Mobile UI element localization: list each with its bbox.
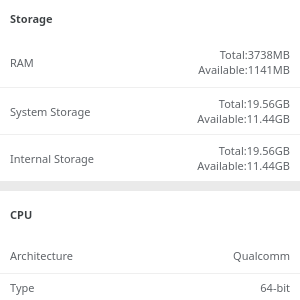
staticText: Internal Storage (10, 151, 95, 166)
staticText: System Storage (10, 104, 91, 119)
button[interactable]: System Storage (0, 88, 300, 134)
staticText: Available:11.44GB (197, 158, 290, 173)
staticText: Architecture (10, 248, 74, 263)
staticText: Total:19.56GB (218, 143, 290, 158)
staticText: Storage (10, 11, 53, 26)
button[interactable]: Type (0, 274, 300, 300)
staticText: Total:3738MB (219, 47, 290, 62)
button[interactable]: Internal Storage (0, 135, 300, 181)
staticText: 64-bit (260, 280, 290, 295)
staticText: CPU (10, 207, 33, 222)
staticText: Type (10, 280, 35, 295)
staticText: Available:1141MB (198, 62, 290, 77)
staticText: Qualcomm (233, 248, 290, 263)
button[interactable]: Architecture (0, 237, 300, 273)
staticText: RAM (10, 55, 34, 70)
button[interactable]: RAM (0, 37, 300, 87)
staticText: Total:19.56GB (218, 96, 290, 111)
staticText: Available:11.44GB (197, 111, 290, 126)
